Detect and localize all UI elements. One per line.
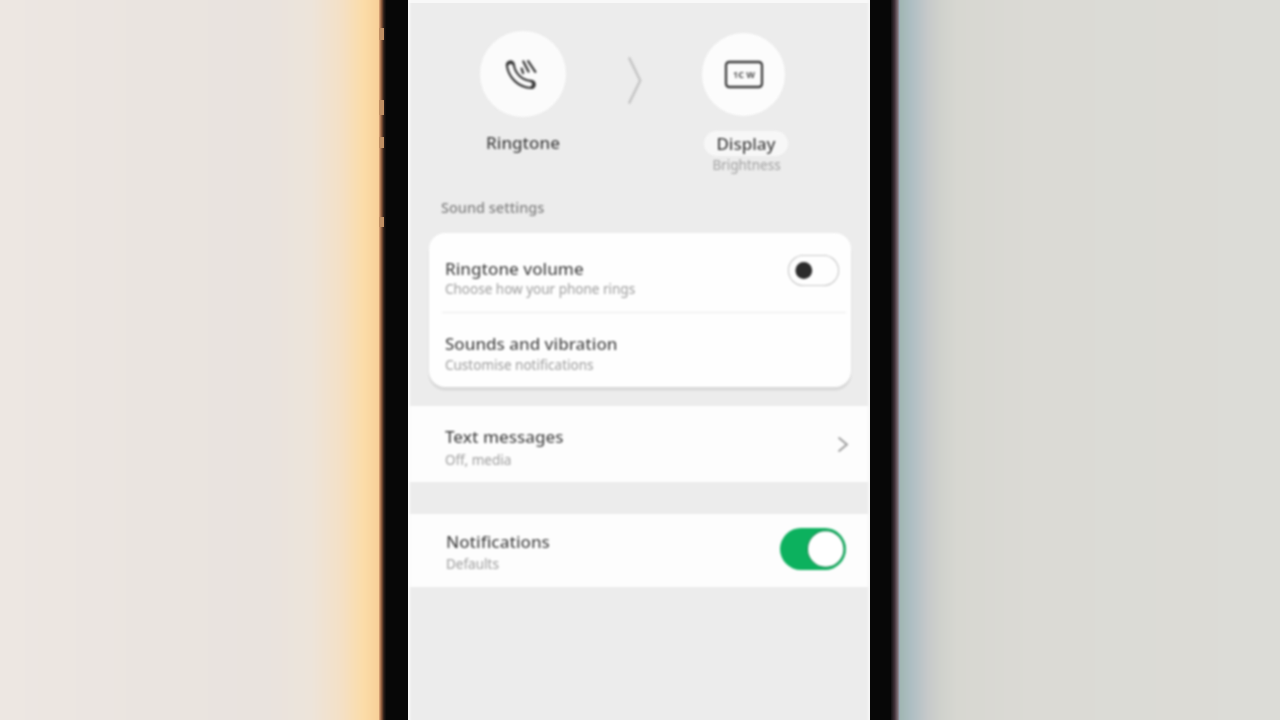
staticText: Ringtone [486,131,560,154]
staticText: Display [716,132,776,155]
button[interactable]: Text messages [408,406,870,482]
staticText: Sound settings [441,197,545,217]
staticText: Defaults [446,555,499,573]
staticText: Sounds and vibration [445,332,618,355]
button[interactable]: Sounds and vibration [429,312,851,387]
staticText: Off, media [445,451,512,469]
staticText: Customise notifications [445,356,594,374]
button[interactable]: Ringtone volume, off [788,255,839,286]
staticText: Ringtone volume [445,257,584,280]
staticText: Choose how your phone rings [445,280,636,298]
button[interactable]: Ringtone [480,31,566,117]
staticText: 1C W [733,68,755,80]
staticText: Brightness [712,156,781,174]
button[interactable]: Display [702,33,785,116]
staticText: Notifications [446,530,550,553]
button[interactable]: Notifications, on [780,528,846,570]
staticText: Text messages [445,425,564,448]
button[interactable]: Notifications [408,514,870,587]
button[interactable]: Ringtone volume [429,233,851,311]
